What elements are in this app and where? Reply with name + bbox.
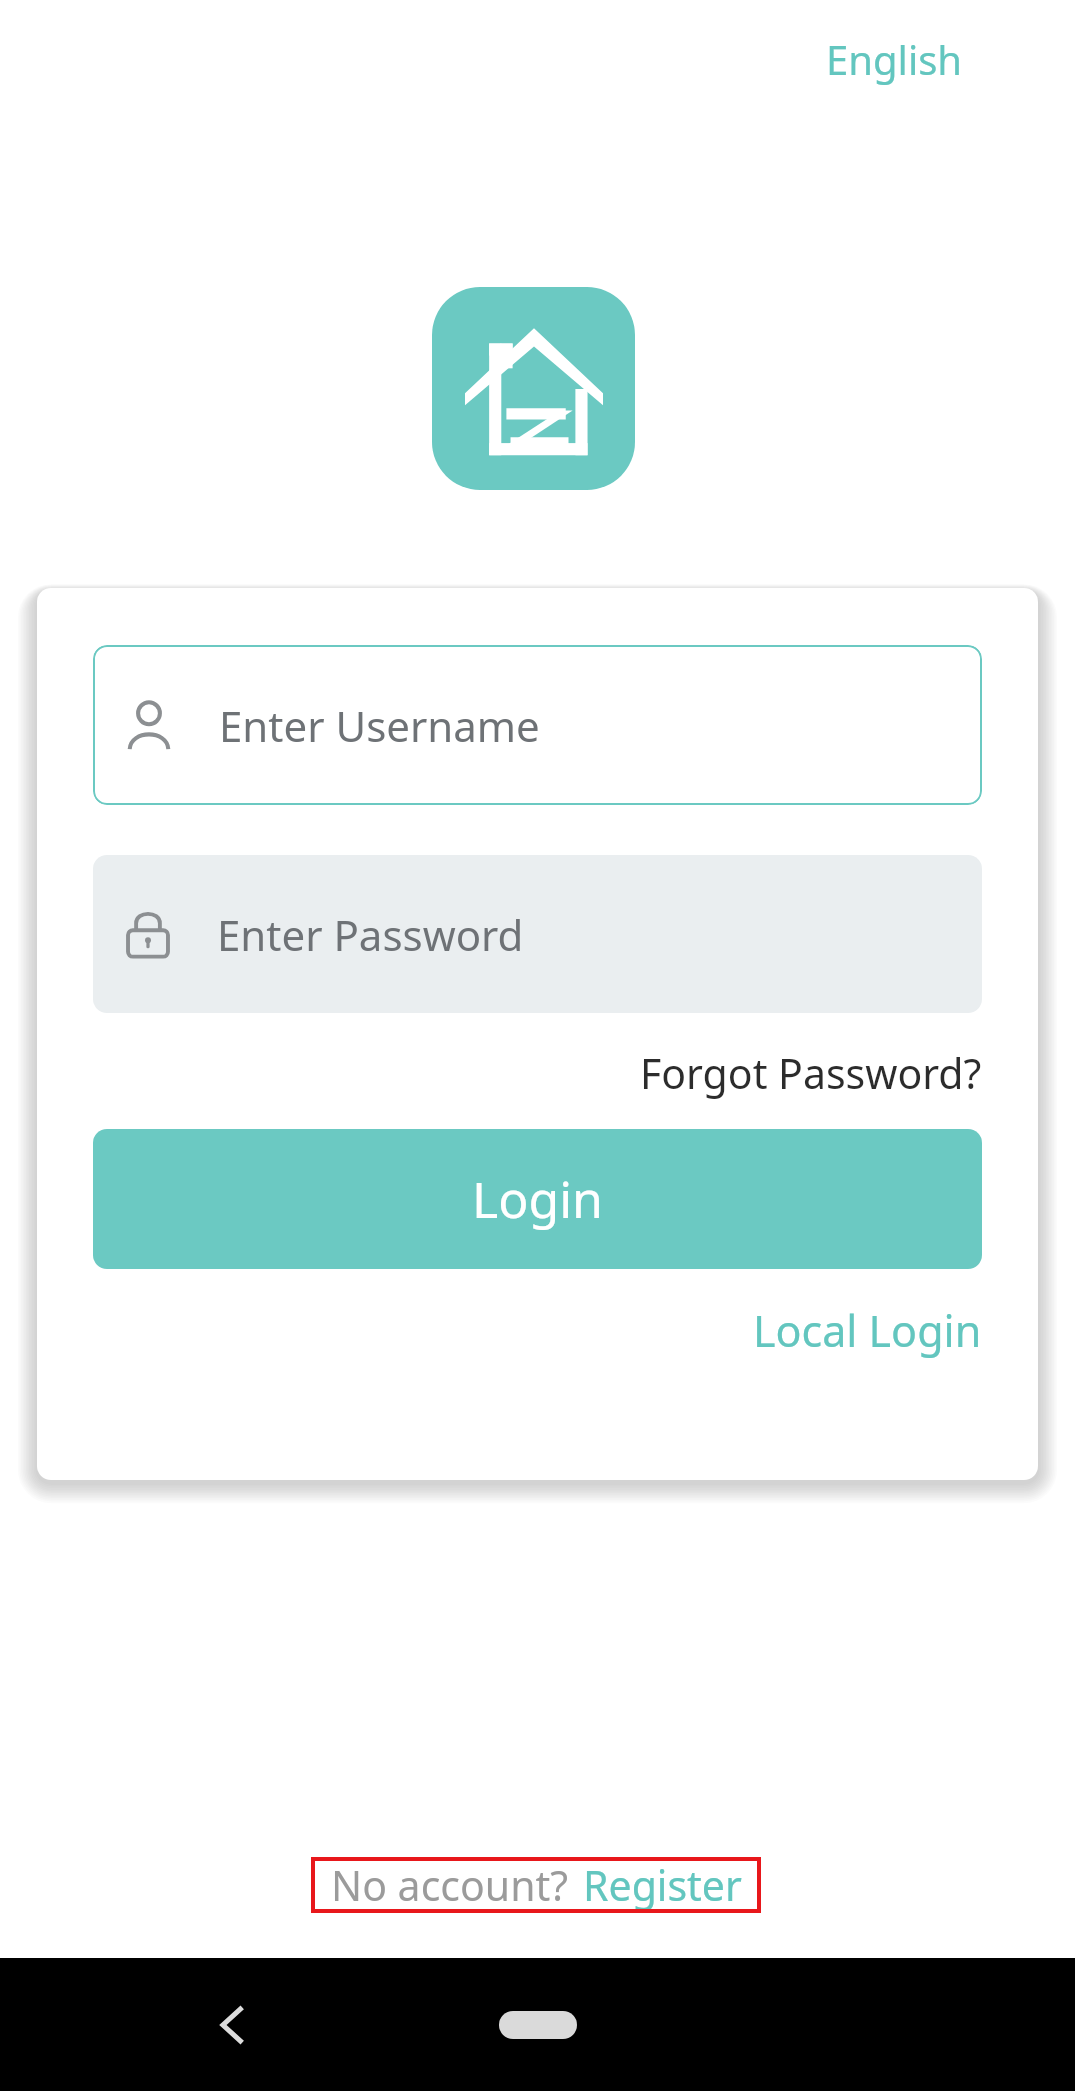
staticText: Forgot Password? xyxy=(640,1045,982,1101)
staticText: Register xyxy=(583,1857,742,1913)
button[interactable]: Forgot Password? xyxy=(640,1039,982,1107)
staticText: Login xyxy=(472,1165,603,1233)
button[interactable]: Enter Password xyxy=(93,855,982,1013)
button[interactable]: Login xyxy=(93,1129,982,1269)
button[interactable]: Local Login xyxy=(753,1295,982,1366)
staticText: Enter Password xyxy=(217,906,524,963)
button[interactable]: English xyxy=(810,22,979,96)
button[interactable]: No account? xyxy=(311,1857,761,1913)
button[interactable]: Enter Username xyxy=(93,645,982,805)
staticText: English xyxy=(826,32,963,86)
button[interactable]: Home xyxy=(458,1970,618,2080)
staticText: Local Login xyxy=(753,1301,982,1360)
staticText: No account? xyxy=(331,1857,569,1913)
staticText: Enter Username xyxy=(219,697,540,754)
button[interactable]: Back xyxy=(190,1982,276,2068)
